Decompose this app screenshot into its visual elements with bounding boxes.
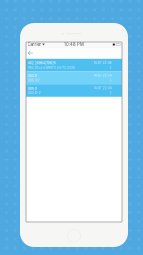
- staticText: 10:48 PM: [64, 42, 84, 47]
- staticText: 462.26964219826: [28, 61, 56, 65]
- staticText: 14:07 22:44: [94, 86, 112, 90]
- button[interactable]: 453.0: [26, 71, 122, 84]
- staticText: 453.0: [28, 74, 37, 78]
- staticText: 906.0: [28, 86, 37, 91]
- staticText: 14:07 22:54: [94, 74, 112, 77]
- staticText: Carrier: [28, 42, 42, 47]
- button[interactable]: 462.26964219826: [26, 59, 122, 71]
- staticText: 14:07 22:46: [94, 61, 112, 65]
- staticText: 453.0^2: [28, 91, 41, 95]
- button[interactable]: 906.0: [26, 84, 122, 97]
- staticText: 906.0/2: [28, 78, 40, 82]
- staticText: 462.05×sin(960°3.5)x²/3.3330: [28, 66, 75, 69]
- button[interactable]: Back: [26, 47, 36, 58]
